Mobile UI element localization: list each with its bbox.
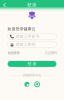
button[interactable]: 登 录 xyxy=(7,61,56,67)
staticText: 请输入密码 xyxy=(16,42,36,47)
staticText: 其他登录方式 xyxy=(23,73,41,77)
button[interactable]: 返回 xyxy=(1,0,8,9)
button[interactable]: 短信登录 xyxy=(7,51,19,55)
staticText: 登录 xyxy=(27,2,37,8)
button[interactable]: 请输入手机号 xyxy=(7,34,56,39)
button[interactable]: 请输入密码 xyxy=(7,42,56,47)
staticText: 短信登录 xyxy=(7,51,19,55)
staticText: 忘记密码 xyxy=(44,51,56,55)
button[interactable]: 支付宝登录 xyxy=(34,82,40,87)
staticText: 登 录 xyxy=(27,61,36,66)
staticText: 请输入手机号 xyxy=(16,34,40,39)
staticText: 欢迎登录健康云 xyxy=(7,26,35,31)
button[interactable]: 微信登录 xyxy=(24,82,29,87)
button[interactable]: 忘记密码 xyxy=(44,51,56,55)
